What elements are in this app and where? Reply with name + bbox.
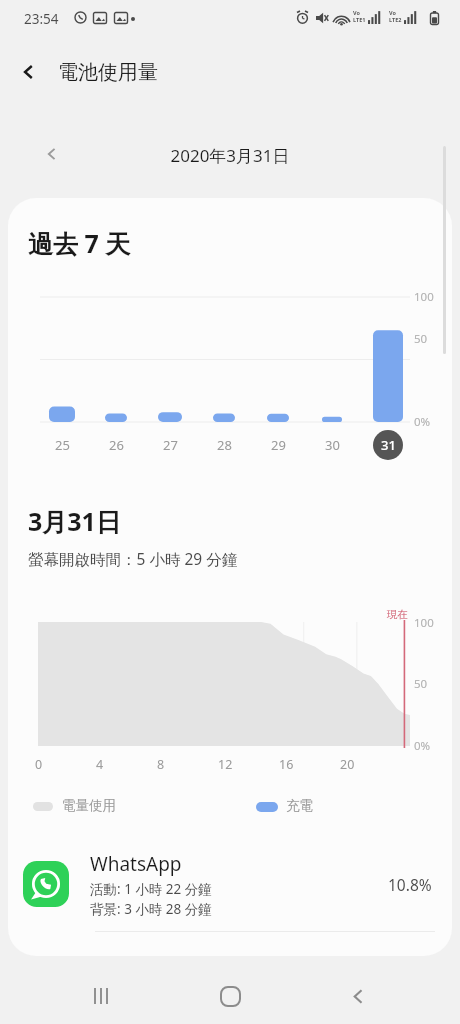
button[interactable]: Home — [190, 968, 270, 1024]
staticText: 23:54 — [24, 10, 59, 28]
button[interactable]: Previous day — [30, 132, 74, 176]
staticText: 100 — [414, 289, 434, 305]
staticText: 充電 — [286, 797, 313, 814]
staticText: 30 — [325, 436, 340, 454]
staticText: 50 — [414, 331, 428, 347]
staticText: 電量使用 — [62, 797, 116, 814]
staticText: 0% — [414, 414, 431, 430]
staticText: 20 — [340, 756, 355, 773]
staticText: 100 — [414, 615, 434, 631]
staticText: WhatsApp — [90, 851, 182, 877]
staticText: 0 — [35, 756, 43, 773]
button[interactable]: Back — [0, 48, 58, 96]
button[interactable]: 31 — [373, 430, 403, 460]
button[interactable]: Back — [318, 968, 398, 1024]
staticText: 電池使用量 — [58, 60, 158, 85]
staticText: 16 — [279, 756, 294, 773]
staticText: 螢幕開啟時間：5 小時 29 分鐘 — [28, 548, 238, 569]
button[interactable]: Recents — [62, 968, 142, 1024]
staticText: 8 — [157, 756, 165, 773]
staticText: 31 — [381, 436, 396, 454]
button[interactable]: WhatsApp — [8, 838, 452, 930]
staticText: 現在 — [387, 608, 408, 621]
staticText: 過去 7 天 — [28, 226, 131, 260]
staticText: 28 — [217, 436, 232, 454]
button[interactable]: 25 — [47, 430, 77, 460]
staticText: 4 — [96, 756, 104, 773]
staticText: Vo — [389, 9, 396, 16]
button[interactable]: 27 — [155, 430, 185, 460]
staticText: 活動: 1 小時 22 分鐘 — [90, 880, 212, 898]
staticText: 2020年3月31日 — [0, 144, 460, 167]
staticText: 50 — [414, 676, 428, 692]
staticText: 10.8% — [388, 874, 432, 895]
button[interactable]: 28 — [209, 430, 239, 460]
staticText: Vo — [353, 9, 360, 16]
staticText: 29 — [271, 436, 286, 454]
staticText: 26 — [109, 436, 124, 454]
button[interactable]: 30 — [317, 430, 347, 460]
staticText: 27 — [163, 436, 178, 454]
staticText: 背景: 3 小時 28 分鐘 — [90, 900, 212, 918]
staticText: 25 — [55, 436, 70, 454]
button[interactable]: 26 — [101, 430, 131, 460]
staticText: LTE2 — [389, 16, 402, 23]
staticText: LTE1 — [353, 16, 366, 23]
staticText: 0% — [414, 738, 431, 754]
staticText: 12 — [218, 756, 233, 773]
staticText: 3月31日 — [28, 504, 121, 538]
button[interactable]: 29 — [263, 430, 293, 460]
